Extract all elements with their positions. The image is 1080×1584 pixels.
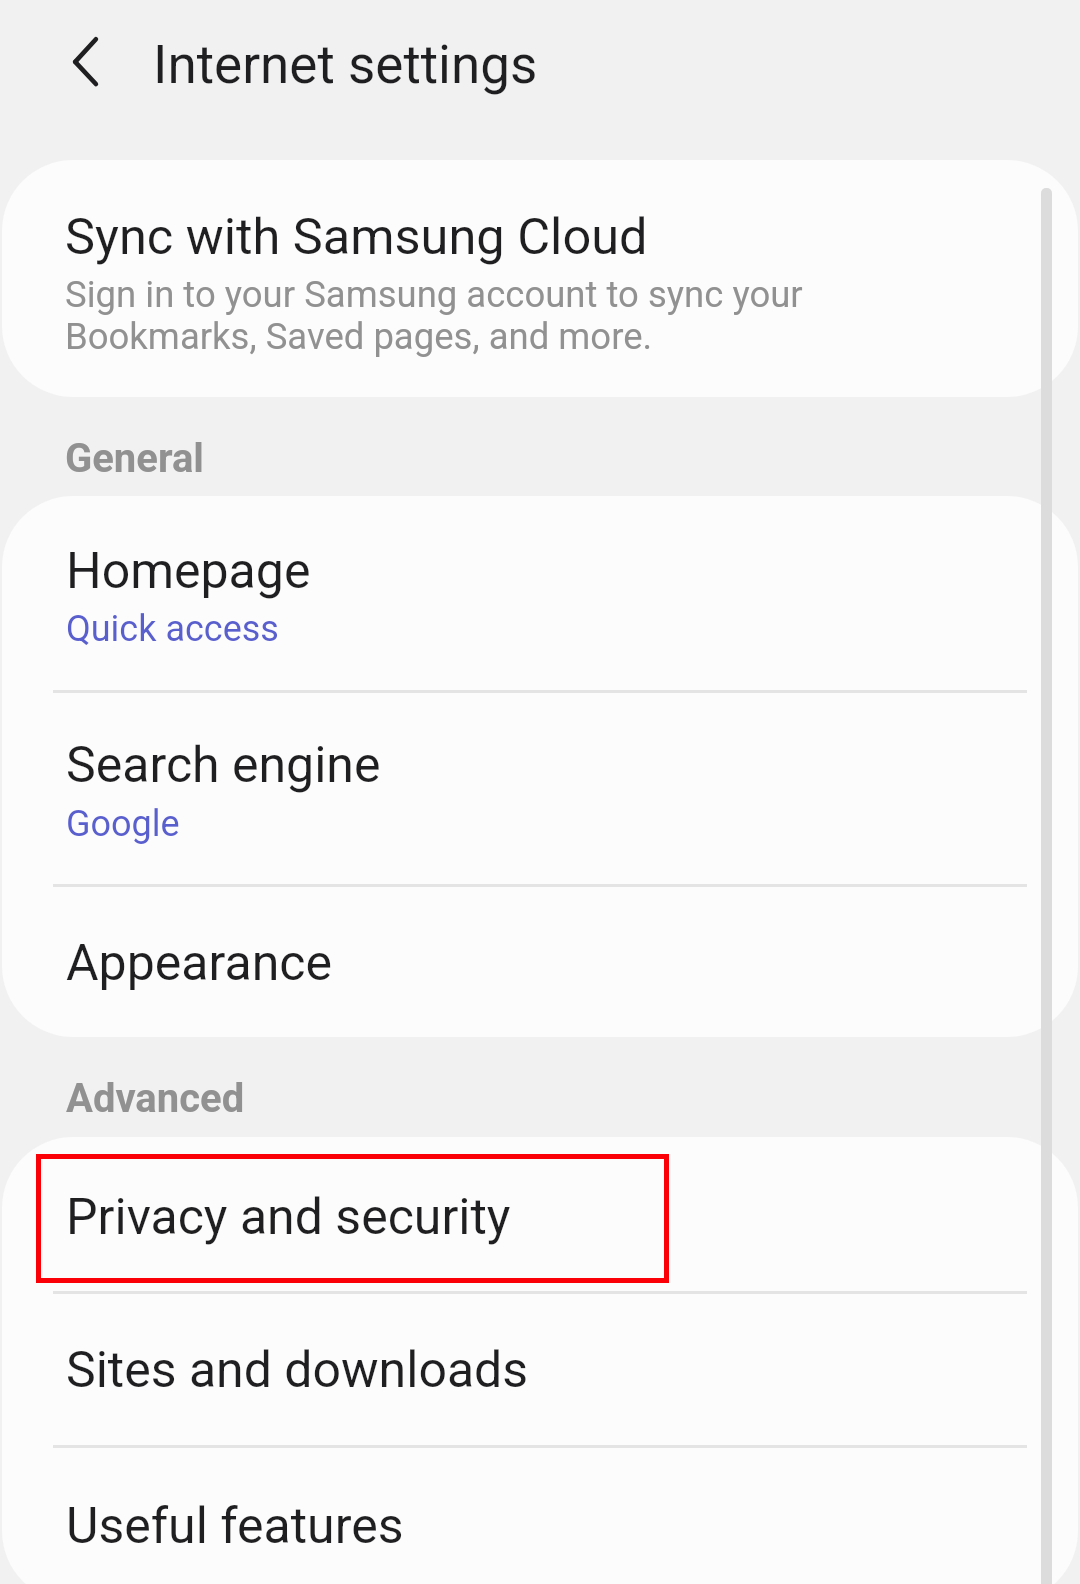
button[interactable]: Search engine	[2, 691, 1078, 885]
staticText: Internet settings	[153, 34, 538, 96]
staticText: Privacy and security	[66, 1188, 511, 1247]
staticText: General	[65, 435, 204, 482]
staticText: Quick access	[66, 608, 279, 650]
button[interactable]: Sync with Samsung Cloud	[2, 160, 1078, 397]
button[interactable]: Useful features	[2, 1446, 1078, 1584]
button[interactable]: Navigate up	[40, 17, 130, 107]
staticText: Sign in to your Samsung account to sync …	[65, 273, 965, 358]
button[interactable]: Privacy and security	[2, 1137, 1078, 1292]
staticText: Search engine	[66, 736, 381, 795]
staticText: Homepage	[66, 542, 311, 601]
staticText: Appearance	[66, 934, 332, 993]
button[interactable]: Homepage	[2, 496, 1078, 691]
staticText: Sync with Samsung Cloud	[65, 207, 648, 266]
staticText: Sites and downloads	[66, 1341, 529, 1400]
button[interactable]: Sites and downloads	[2, 1292, 1078, 1446]
staticText: Useful features	[66, 1497, 404, 1556]
button[interactable]: Appearance	[2, 885, 1078, 1037]
staticText: Google	[66, 803, 180, 845]
staticText: Advanced	[66, 1075, 245, 1122]
